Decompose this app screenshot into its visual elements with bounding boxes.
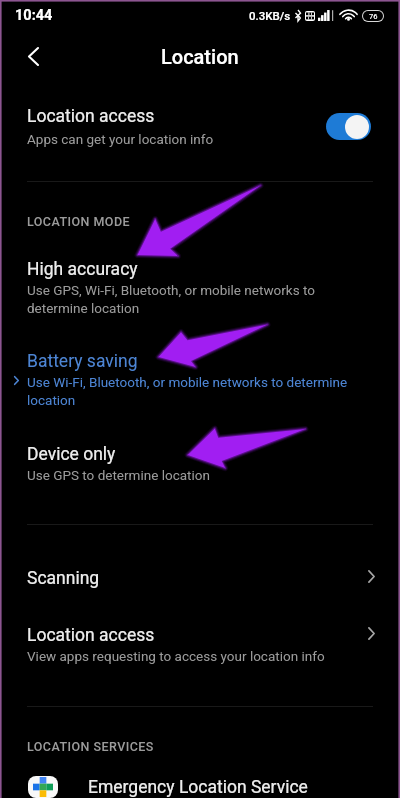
- staticText: Location access: [27, 106, 155, 127]
- staticText: View apps requesting to access your loca…: [27, 648, 325, 664]
- staticText: Use GPS, Wi-Fi, Bluetooth, or mobile net…: [27, 282, 315, 316]
- staticText: 0.3KB/s: [249, 9, 291, 22]
- button[interactable]: Location access toggle: [326, 113, 371, 140]
- staticText: Scanning: [27, 568, 100, 589]
- button[interactable]: Scanning: [0, 548, 400, 598]
- button[interactable]: Device only: [0, 435, 400, 509]
- staticText: Apps can get your location info: [27, 131, 214, 147]
- staticText: LOCATION MODE: [27, 214, 131, 229]
- staticText: Device only: [27, 444, 116, 465]
- button[interactable]: Emergency Location Service: [0, 776, 400, 798]
- staticText: Use GPS to determine location: [27, 467, 210, 483]
- staticText: Location: [161, 45, 239, 68]
- button[interactable]: High accuracy: [0, 250, 400, 324]
- staticText: LOCATION SERVICES: [27, 739, 154, 754]
- staticText: Battery saving: [27, 351, 138, 372]
- button[interactable]: Location access: [0, 605, 400, 673]
- staticText: Use Wi-Fi, Bluetooth, or mobile networks…: [27, 374, 348, 408]
- staticText: 76: [369, 12, 378, 21]
- button[interactable]: Back: [9, 32, 57, 80]
- button[interactable]: Location access: [0, 95, 400, 157]
- staticText: High accuracy: [27, 259, 138, 280]
- staticText: 10:44: [15, 7, 53, 24]
- staticText: Emergency Location Service: [88, 777, 308, 798]
- button[interactable]: Battery saving: [0, 342, 400, 416]
- staticText: Location access: [27, 625, 155, 646]
